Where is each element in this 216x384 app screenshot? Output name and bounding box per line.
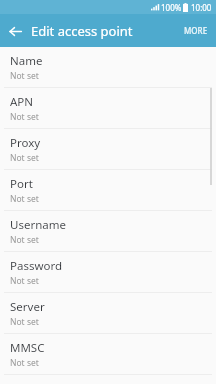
- button[interactable]: Username: [0, 211, 216, 251]
- staticText: MMSC: [10, 340, 45, 356]
- staticText: Not set: [10, 70, 39, 82]
- staticText: APN: [10, 94, 34, 110]
- staticText: Not set: [10, 152, 39, 164]
- button[interactable]: Server: [0, 293, 216, 333]
- staticText: Username: [10, 217, 66, 233]
- button[interactable]: Port: [0, 170, 216, 210]
- staticText: Name: [10, 53, 43, 69]
- staticText: Port: [10, 176, 33, 192]
- staticText: Server: [10, 299, 45, 315]
- staticText: MORE: [184, 25, 208, 36]
- staticText: 100%: [161, 2, 182, 13]
- staticText: Password: [10, 258, 63, 274]
- staticText: Edit access point: [31, 22, 133, 40]
- staticText: Proxy: [10, 135, 41, 151]
- staticText: Not set: [10, 275, 39, 287]
- staticText: Not set: [10, 357, 39, 369]
- button[interactable]: APN: [0, 88, 216, 128]
- button[interactable]: Proxy: [0, 129, 216, 169]
- staticText: Not set: [10, 316, 39, 328]
- staticText: Not set: [10, 111, 39, 123]
- staticText: Not set: [10, 193, 39, 205]
- button[interactable]: Name: [0, 47, 216, 87]
- staticText: Not set: [10, 234, 39, 246]
- staticText: 10:00: [191, 2, 212, 13]
- button[interactable]: MMSC: [0, 334, 216, 374]
- button[interactable]: MORE: [176, 19, 216, 42]
- button[interactable]: Navigate up: [0, 16, 30, 46]
- button[interactable]: Password: [0, 252, 216, 292]
